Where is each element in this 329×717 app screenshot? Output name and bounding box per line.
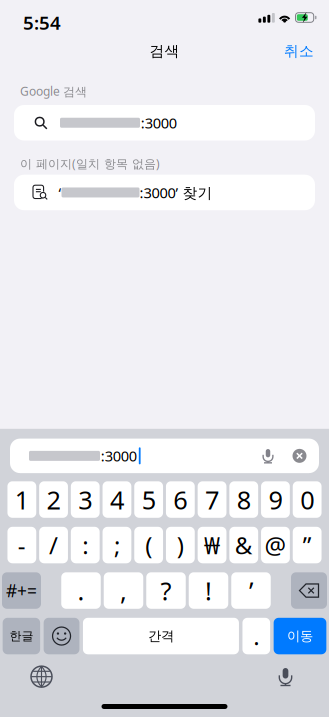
button[interactable]: : — [71, 527, 100, 563]
button[interactable]: ; — [102, 527, 131, 563]
staticText: ” — [303, 529, 312, 561]
button[interactable]: ₩ — [198, 527, 226, 563]
staticText: 한글 — [9, 629, 33, 643]
button[interactable]: 6 — [166, 481, 195, 518]
button[interactable]: Emoji — [44, 618, 79, 654]
staticText: 0 — [300, 483, 314, 516]
button[interactable]: 1 — [7, 481, 36, 518]
staticText: 1 — [15, 483, 29, 516]
button[interactable]: ! — [189, 572, 228, 609]
button[interactable]: #+= — [2, 572, 41, 609]
staticText: 이 페이지(일치 항목 없음) — [20, 155, 160, 171]
staticText: 8 — [237, 483, 251, 516]
staticText: ( — [145, 529, 152, 561]
staticText: :3000’ 찾기 — [139, 183, 212, 202]
staticText: : — [82, 529, 88, 561]
staticText: 검색 — [149, 42, 179, 60]
staticText: @ — [264, 529, 286, 561]
staticText: 5 — [142, 483, 156, 516]
staticText: 6 — [173, 483, 187, 516]
button[interactable]: ? — [146, 572, 186, 609]
staticText: Google 검색 — [20, 83, 87, 99]
staticText: ‘ — [58, 183, 61, 202]
button[interactable]: 2 — [39, 481, 68, 518]
button[interactable]: , — [104, 572, 143, 609]
staticText: , — [120, 574, 127, 607]
staticText: . — [77, 574, 84, 607]
button[interactable]: @ — [261, 527, 290, 563]
button[interactable]: ) — [166, 527, 195, 563]
staticText: ) — [177, 529, 184, 561]
button[interactable]: & — [229, 527, 258, 563]
staticText: 5:54 — [23, 10, 61, 35]
button[interactable]: . — [61, 572, 101, 609]
button[interactable]: 4 — [102, 481, 131, 518]
staticText: - — [18, 529, 26, 561]
button[interactable]: 취소 — [284, 36, 329, 66]
staticText: #+= — [6, 579, 37, 602]
staticText: 간격 — [148, 628, 174, 644]
staticText: ; — [114, 529, 120, 561]
button[interactable]: ” — [293, 527, 321, 563]
staticText: / — [49, 529, 58, 561]
button[interactable]: 5 — [134, 481, 163, 518]
button[interactable]: Dictate — [268, 659, 329, 694]
button[interactable]: 3 — [71, 481, 100, 518]
button[interactable]: Next keyboard — [0, 658, 60, 695]
staticText: 취소 — [284, 42, 314, 60]
staticText: ? — [160, 574, 171, 607]
button[interactable]: ( — [134, 527, 163, 563]
staticText: 7 — [205, 483, 219, 516]
staticText: 3 — [78, 483, 92, 516]
staticText: 4 — [110, 483, 124, 516]
button[interactable]: 9 — [261, 481, 290, 518]
button[interactable]: Clear text — [280, 441, 306, 471]
staticText: 2 — [46, 483, 60, 516]
staticText: :3000 — [141, 113, 177, 132]
button[interactable]: 7 — [198, 481, 226, 518]
button[interactable]: . — [242, 618, 270, 654]
button[interactable]: 0 — [293, 481, 321, 518]
button[interactable]: :3000 — [0, 105, 315, 140]
button[interactable]: 이동 — [274, 618, 326, 654]
button[interactable]: ’ — [231, 572, 271, 609]
staticText: & — [235, 529, 253, 561]
staticText: . — [253, 620, 259, 652]
button[interactable]: ‘ — [0, 175, 315, 210]
staticText: 이동 — [287, 628, 313, 644]
button[interactable]: 간격 — [83, 618, 239, 654]
button[interactable]: / — [39, 527, 68, 563]
staticText: ’ — [249, 574, 253, 607]
staticText: ₩ — [204, 529, 220, 561]
button[interactable]: Delete — [291, 572, 327, 609]
button[interactable]: 8 — [229, 481, 258, 518]
staticText: ! — [205, 574, 212, 607]
staticText: :3000 — [101, 446, 137, 466]
button[interactable]: 한글 — [3, 618, 40, 654]
staticText: 9 — [268, 483, 282, 516]
button[interactable]: - — [7, 527, 36, 563]
button[interactable]: Dictate — [255, 440, 280, 471]
